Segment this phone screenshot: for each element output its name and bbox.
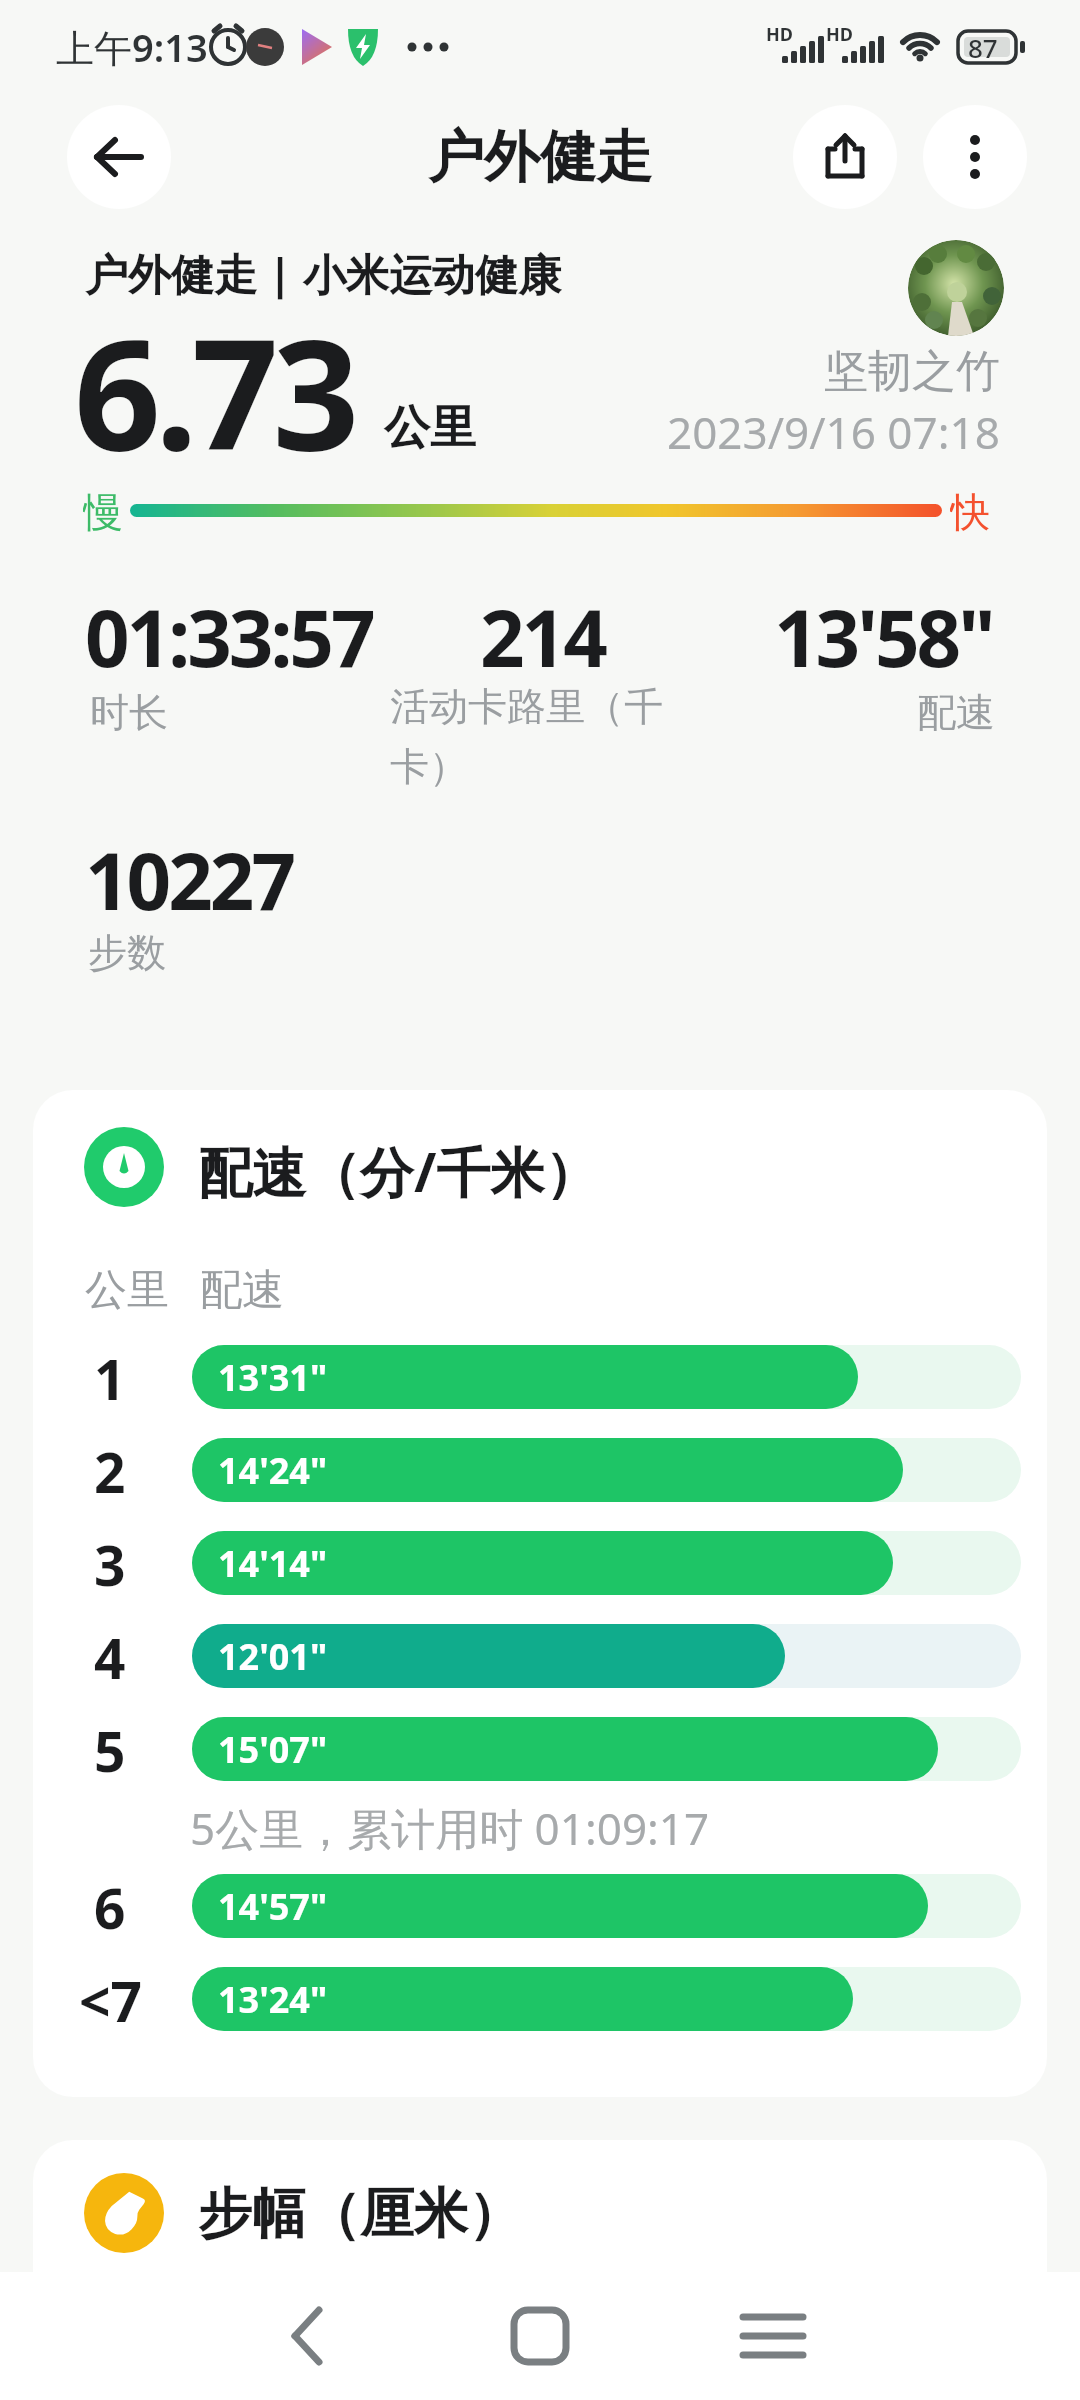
staticText: 公里 <box>384 399 476 457</box>
staticText: 1 <box>94 1341 126 1413</box>
staticText: 5 <box>94 1713 126 1785</box>
staticText: 2 <box>94 1434 126 1506</box>
button[interactable] <box>713 2276 833 2396</box>
staticText: 5公里，累计用时 01:09:17 <box>190 1798 710 1858</box>
staticText: 4 <box>94 1620 126 1692</box>
staticText: HD <box>826 22 853 44</box>
staticText: 14'14" <box>218 1539 328 1588</box>
staticText: 公里 <box>85 1264 169 1317</box>
staticText: 214 <box>480 584 605 690</box>
staticText: 上午9:13 <box>56 21 208 73</box>
staticText: 户外健走 | 小米运动健康 <box>85 244 562 302</box>
button[interactable] <box>247 2276 367 2396</box>
staticText: 01:33:57 <box>85 584 373 690</box>
staticText: 时长 <box>90 688 168 734</box>
staticText: 13'58" <box>774 584 993 690</box>
staticText: 13'31" <box>218 1353 328 1402</box>
staticText: 配速 <box>917 688 995 734</box>
staticText: 配速 <box>200 1264 284 1317</box>
button[interactable] <box>480 2276 600 2396</box>
staticText: 步幅（厘米） <box>198 2180 522 2246</box>
staticText: 2023/9/16 07:18 <box>667 402 1000 456</box>
staticText: HD <box>766 22 793 44</box>
staticText: 慢 <box>83 487 123 535</box>
button[interactable] <box>67 105 171 209</box>
staticText: 6.73 <box>74 288 354 495</box>
button[interactable] <box>793 105 897 209</box>
staticText: 13'24" <box>218 1975 328 2024</box>
staticText: 10227 <box>85 827 294 933</box>
staticText: 3 <box>94 1527 126 1599</box>
staticText: 14'57" <box>218 1882 328 1931</box>
staticText: 87 <box>968 30 998 65</box>
button[interactable] <box>908 240 1004 336</box>
staticText: 活动卡路里（千卡） <box>390 682 668 791</box>
staticText: 坚韧之竹 <box>824 344 1000 396</box>
staticText: <7 <box>79 1963 142 2035</box>
staticText: 15'07" <box>218 1725 328 1774</box>
staticText: 12'01" <box>218 1632 328 1681</box>
staticText: 6 <box>94 1870 126 1942</box>
staticText: 快 <box>950 487 990 535</box>
staticText: 配速（分/千米） <box>198 1134 599 1200</box>
staticText: 14'24" <box>218 1446 328 1495</box>
button[interactable] <box>923 105 1027 209</box>
staticText: 户外健走 <box>428 122 652 193</box>
staticText: 步数 <box>88 928 166 974</box>
